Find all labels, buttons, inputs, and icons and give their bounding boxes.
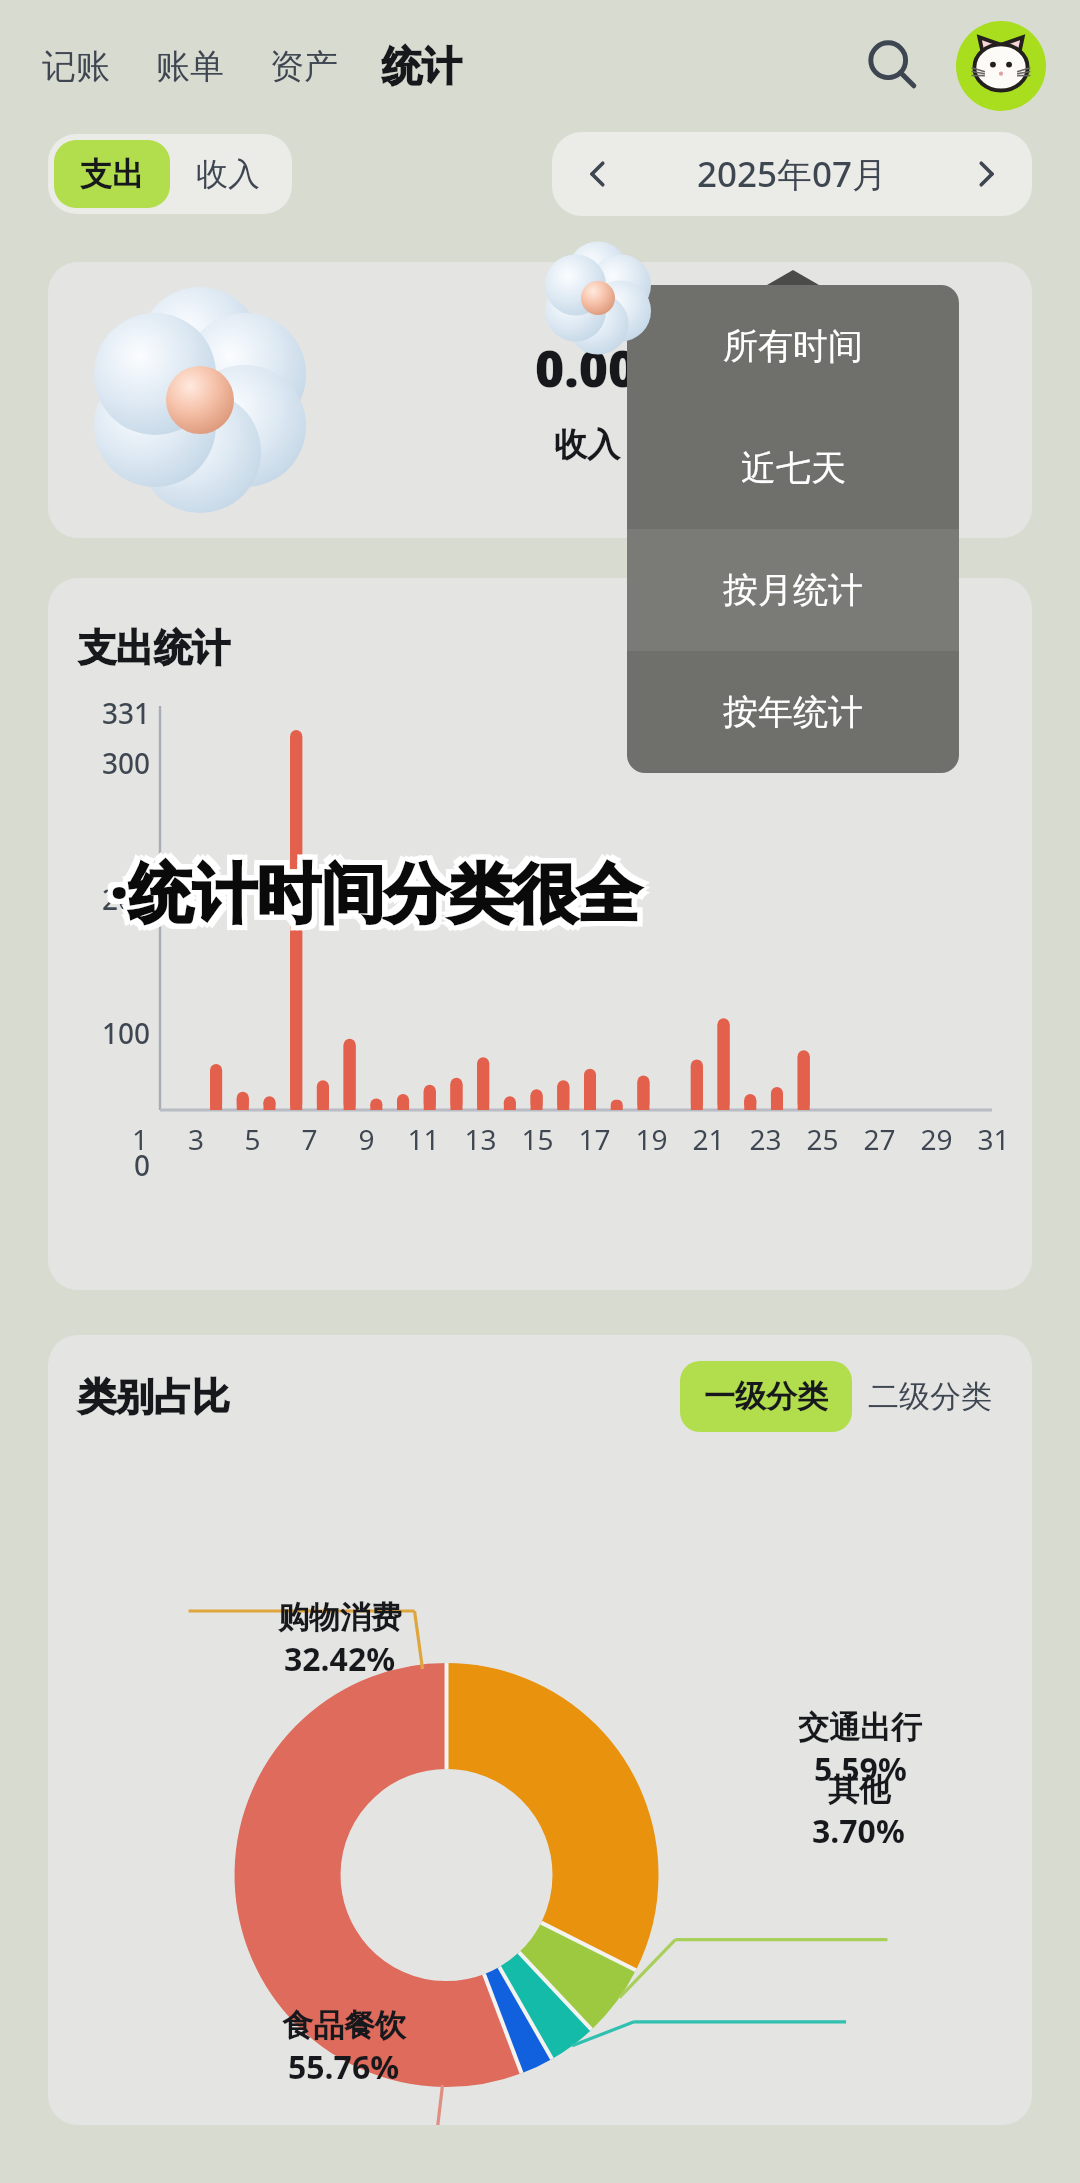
staticText: ·统计时间分类很全	[110, 843, 641, 930]
staticText: 0	[58, 1146, 150, 1184]
staticText: 支出	[80, 154, 144, 194]
staticText: 19	[623, 1120, 680, 1158]
staticText: 200	[58, 880, 150, 918]
button[interactable]: 按年统计	[627, 651, 959, 773]
button[interactable]: 统计	[382, 29, 462, 103]
staticText: 55.76%	[288, 2045, 400, 2089]
button[interactable]: Profile	[956, 21, 1046, 111]
button[interactable]: 一级分类	[680, 1361, 852, 1432]
staticText: 二级分类	[868, 1377, 992, 1416]
staticText: 统计	[382, 41, 462, 91]
staticText: 记账	[42, 45, 110, 88]
button[interactable]: 0.00	[48, 262, 1032, 538]
staticText: 11	[395, 1120, 452, 1158]
staticText: -3 70	[818, 334, 935, 402]
button[interactable]: 支出统计	[78, 624, 230, 672]
staticText: 1	[112, 1120, 168, 1158]
button[interactable]: 2025年07月	[620, 150, 964, 198]
staticText: 300	[58, 744, 150, 782]
staticText: ·统计时间分类很全	[105, 853, 636, 940]
staticText: 23	[737, 1120, 794, 1158]
staticText: 按月统计	[723, 568, 863, 612]
button[interactable]: 近七天	[627, 407, 959, 529]
button[interactable]: 收入	[170, 140, 286, 208]
staticText: 一级分类	[704, 1377, 828, 1416]
staticText: 25	[794, 1120, 851, 1158]
button[interactable]: 资产	[270, 33, 338, 100]
staticText: ·统计时间分类很全	[105, 848, 636, 935]
staticText: 100	[58, 1014, 150, 1052]
staticText: 所有时间	[723, 324, 863, 368]
staticText: 收入	[196, 154, 260, 194]
staticText: 27	[851, 1120, 908, 1158]
staticText: 购物消费	[278, 1598, 402, 1637]
staticText: 资产	[270, 45, 338, 88]
button[interactable]: 账单	[156, 33, 224, 100]
button[interactable]: Next month	[964, 151, 1010, 197]
staticText: ·统计时间分类很全	[115, 853, 646, 940]
button[interactable]: 支出	[54, 140, 170, 208]
staticText: 29	[908, 1120, 965, 1158]
staticText: 21	[680, 1120, 737, 1158]
staticText: 15	[509, 1120, 566, 1158]
staticText: 近七天	[741, 446, 846, 490]
staticText: 13	[452, 1120, 509, 1158]
staticText: ·统计时间分类很全	[110, 848, 641, 935]
staticText: 交通出行	[798, 1708, 922, 1747]
staticText: 0.00	[535, 334, 638, 402]
button[interactable]: 类别占比	[78, 1373, 230, 1421]
staticText: 31	[965, 1120, 1022, 1158]
staticText: ·统计时间分类很全	[115, 843, 646, 930]
button[interactable]: 按月统计	[627, 529, 959, 651]
staticText: 3	[168, 1120, 224, 1158]
staticText: 其他	[828, 1770, 890, 1809]
button[interactable]: Previous month	[574, 151, 620, 197]
button[interactable]: 记账	[42, 33, 110, 100]
staticText: ·统计时间分类很全	[105, 843, 636, 930]
staticText: 32.42%	[284, 1637, 396, 1681]
staticText: 9	[338, 1120, 395, 1158]
staticText: 按年统计	[723, 690, 863, 734]
staticText: 5	[224, 1120, 281, 1158]
staticText: 3.70%	[812, 1809, 905, 1853]
staticText: 账单	[156, 45, 224, 88]
button[interactable]: Search	[850, 22, 938, 110]
staticText: ·统计时间分类很全	[110, 853, 641, 940]
button[interactable]: 所有时间	[627, 285, 959, 407]
button[interactable]: 二级分类	[852, 1361, 1008, 1432]
staticText: 食品餐饮	[282, 2006, 406, 2045]
staticText: 331	[58, 694, 150, 732]
staticText: ·统计时间分类很全	[115, 848, 646, 935]
staticText: 17	[566, 1120, 623, 1158]
staticText: 7	[281, 1120, 338, 1158]
staticText: 5.59%	[814, 1747, 907, 1791]
staticText: 收入	[554, 424, 620, 466]
